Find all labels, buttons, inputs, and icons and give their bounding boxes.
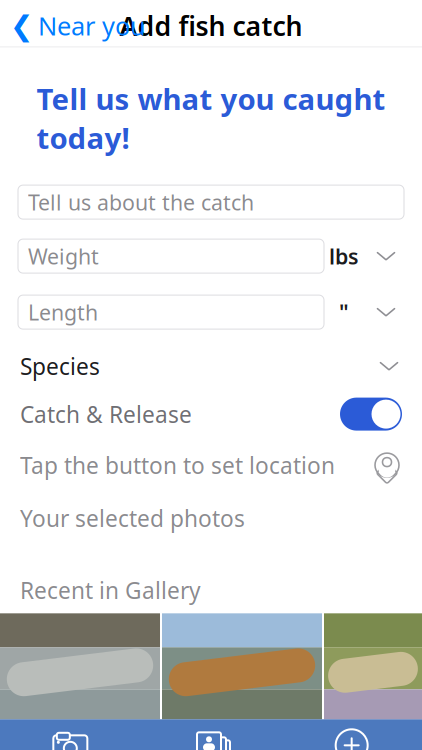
staticText: Tell us about the catch: [28, 188, 254, 216]
staticText: Catch & Release: [20, 399, 192, 429]
staticText: Species: [20, 351, 100, 381]
staticText: Your selected photos: [20, 503, 245, 533]
staticText: Tap the button to set location: [20, 450, 335, 480]
staticText: Weight: [28, 242, 99, 270]
staticText: Tell us what you caught today!: [36, 79, 385, 157]
button[interactable]: Catch & Release: [0, 389, 422, 439]
staticText: ❮: [10, 10, 33, 42]
staticText: Near you: [38, 9, 146, 42]
button[interactable]: Tap the button to set location: [0, 439, 422, 491]
button[interactable]: Add catch: [281, 719, 422, 750]
staticText: Length: [28, 298, 98, 326]
button[interactable]: Species: [0, 343, 422, 389]
button[interactable]: Choose length unit: [364, 293, 408, 331]
button[interactable]: Take photo: [0, 719, 141, 750]
button[interactable]: ❮: [0, 6, 156, 46]
staticText: ": [339, 298, 349, 326]
staticText: lbs: [329, 242, 359, 270]
staticText: Recent in Gallery: [20, 575, 201, 605]
button[interactable]: Choose from gallery: [141, 719, 281, 750]
button[interactable]: Choose weight unit: [364, 237, 408, 275]
staticText: Add fish catch: [119, 8, 302, 43]
